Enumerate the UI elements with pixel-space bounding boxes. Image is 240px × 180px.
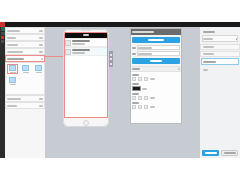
button[interactable] xyxy=(202,35,238,42)
button[interactable] xyxy=(7,64,18,74)
button[interactable] xyxy=(5,95,45,102)
button[interactable] xyxy=(132,105,136,109)
button[interactable] xyxy=(64,47,108,56)
button[interactable] xyxy=(144,105,148,109)
button[interactable] xyxy=(138,105,142,109)
button[interactable] xyxy=(20,64,31,74)
button[interactable] xyxy=(138,96,142,100)
button[interactable] xyxy=(221,150,238,156)
button[interactable] xyxy=(64,38,108,47)
button[interactable] xyxy=(200,44,240,50)
button[interactable] xyxy=(132,96,136,100)
button[interactable] xyxy=(132,58,180,64)
button[interactable] xyxy=(200,51,240,57)
button[interactable] xyxy=(7,76,18,86)
button[interactable] xyxy=(5,55,45,62)
button[interactable] xyxy=(201,58,239,65)
button[interactable] xyxy=(137,51,180,56)
other: Tool rail xyxy=(0,27,5,147)
button[interactable] xyxy=(5,34,45,41)
button[interactable] xyxy=(5,102,45,109)
button[interactable] xyxy=(5,27,45,34)
button[interactable] xyxy=(132,37,180,43)
button[interactable] xyxy=(137,45,180,50)
button[interactable] xyxy=(5,48,45,55)
button[interactable] xyxy=(64,32,108,38)
button[interactable] xyxy=(144,77,148,81)
button[interactable] xyxy=(144,96,148,100)
button[interactable] xyxy=(138,77,142,81)
button[interactable]: Home xyxy=(83,120,89,126)
button[interactable] xyxy=(132,77,136,81)
button[interactable] xyxy=(5,41,45,48)
button[interactable] xyxy=(33,64,43,74)
button[interactable] xyxy=(202,150,219,156)
